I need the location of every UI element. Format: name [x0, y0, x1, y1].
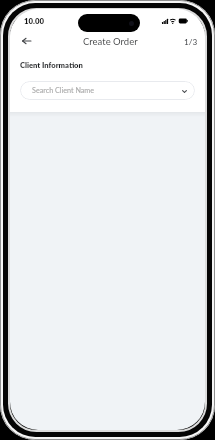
staticText: Search Client Name: [32, 86, 95, 95]
staticText: 1/3: [184, 37, 198, 47]
staticText: 10.00: [24, 16, 44, 25]
button[interactable]: Back: [17, 31, 36, 50]
button[interactable]: Search Client Name: [20, 81, 195, 100]
staticText: Create Order: [83, 36, 138, 47]
staticText: Client Information: [20, 60, 83, 69]
